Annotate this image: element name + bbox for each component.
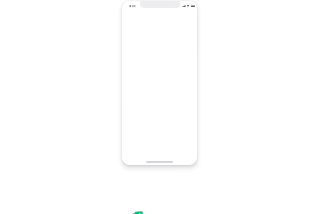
button[interactable]: Brand logo bbox=[131, 210, 143, 214]
button[interactable]: Phone screen preview bbox=[122, 1, 197, 165]
